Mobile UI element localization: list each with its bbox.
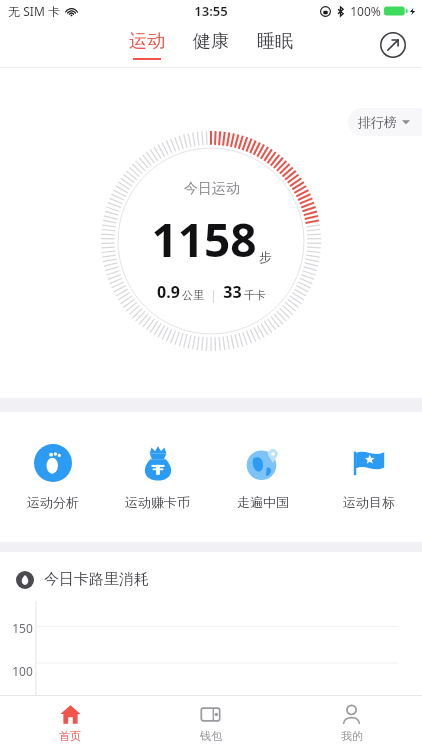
staticText: 运动赚卡币: [125, 494, 190, 510]
staticText: 公里: [182, 288, 204, 302]
staticText: 步: [259, 249, 272, 265]
button[interactable]: 我的: [281, 696, 422, 750]
staticText: 今日运动: [184, 180, 240, 198]
staticText: 首页: [59, 729, 81, 743]
button[interactable]: 运动: [125, 28, 169, 62]
button[interactable]: 睡眠: [253, 28, 297, 62]
button[interactable]: Share: [378, 30, 408, 60]
staticText: 100: [12, 663, 33, 679]
staticText: 运动目标: [343, 494, 395, 510]
staticText: 健康: [193, 30, 229, 53]
staticText: 1158: [151, 208, 257, 271]
staticText: 150: [12, 620, 33, 636]
staticText: 千卡: [244, 288, 266, 302]
button[interactable]: 走遍中国: [210, 412, 316, 542]
button[interactable]: 钱包: [140, 696, 281, 750]
staticText: 100%: [350, 3, 381, 19]
staticText: 0.9: [157, 281, 180, 303]
staticText: 13:55: [194, 2, 228, 20]
button[interactable]: 今日卡路里消耗: [16, 570, 422, 589]
staticText: 运动分析: [27, 494, 79, 510]
button[interactable]: 首页: [0, 696, 140, 750]
button[interactable]: 运动分析: [0, 412, 105, 542]
staticText: 无 SIM 卡: [8, 3, 60, 19]
staticText: 33: [223, 281, 242, 303]
button[interactable]: 今日运动: [101, 131, 321, 351]
staticText: 钱包: [200, 729, 222, 743]
staticText: 走遍中国: [237, 494, 289, 510]
button[interactable]: 运动目标: [316, 412, 422, 542]
staticText: 今日卡路里消耗: [44, 570, 149, 589]
staticText: 睡眠: [257, 30, 293, 53]
staticText: 我的: [341, 729, 363, 743]
button[interactable]: 排行榜: [348, 108, 422, 136]
staticText: 运动: [129, 30, 165, 53]
button[interactable]: 健康: [189, 28, 233, 62]
button[interactable]: 运动赚卡币: [105, 412, 210, 542]
staticText: 排行榜: [358, 114, 397, 130]
